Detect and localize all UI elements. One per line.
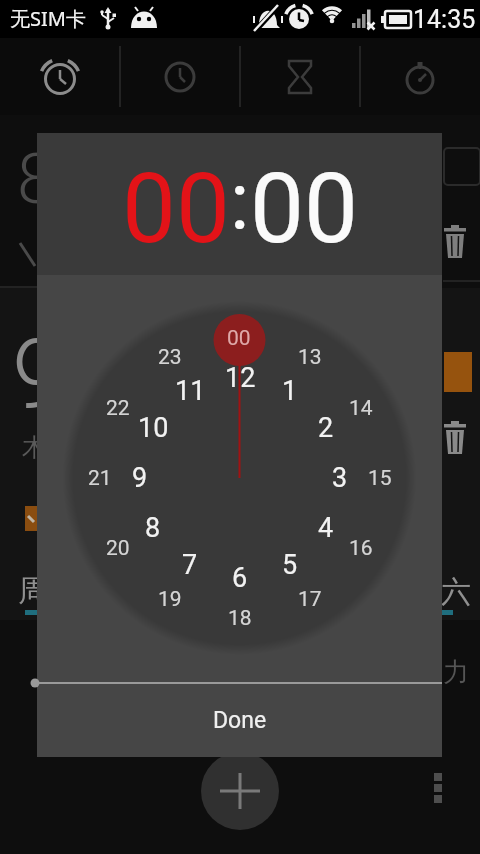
staticText: 00	[250, 153, 358, 266]
staticText: 17	[298, 587, 322, 612]
staticText: 15	[368, 466, 392, 491]
staticText: 5	[282, 549, 298, 581]
staticText: 18	[228, 606, 252, 631]
button[interactable]	[426, 765, 450, 811]
staticText: 14:35	[413, 5, 476, 34]
staticText: 22	[106, 396, 130, 421]
staticText: 7	[182, 549, 198, 581]
staticText: 21	[88, 466, 112, 491]
staticText: Done	[213, 707, 267, 734]
staticText: 13	[298, 345, 322, 370]
staticText: :	[230, 155, 250, 249]
staticText: 00	[122, 153, 230, 266]
staticText: 9	[132, 462, 148, 494]
button[interactable]	[120, 38, 240, 115]
staticText: 3	[332, 462, 348, 494]
button[interactable]	[0, 38, 120, 115]
button[interactable]	[360, 38, 480, 115]
staticText: 8	[17, 138, 56, 220]
staticText: 00	[227, 326, 251, 351]
staticText: 20	[106, 536, 130, 561]
button[interactable]: Done	[37, 684, 442, 757]
staticText: 1	[282, 375, 298, 407]
staticText: 19	[158, 587, 182, 612]
staticText: 9	[12, 318, 66, 431]
staticText: 11	[175, 375, 206, 407]
staticText: 无SIM卡	[10, 5, 86, 32]
staticText: 12	[225, 362, 256, 394]
button[interactable]	[201, 752, 279, 830]
staticText: 10	[138, 412, 169, 444]
staticText: 6	[232, 562, 248, 594]
button[interactable]	[240, 38, 360, 115]
staticText: 23	[158, 345, 182, 370]
staticText: 木	[22, 432, 47, 463]
staticText: 六	[441, 573, 471, 611]
staticText: 周	[18, 572, 48, 610]
staticText: 4	[318, 512, 334, 544]
staticText: 14	[349, 396, 373, 421]
staticText: 2	[318, 412, 334, 444]
staticText: 力	[443, 656, 469, 689]
staticText: 16	[349, 536, 373, 561]
staticText: 8	[145, 512, 161, 544]
